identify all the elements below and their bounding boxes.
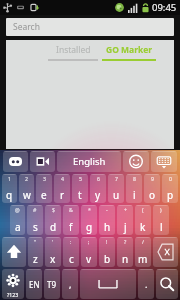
button[interactable]: Space — [80, 269, 136, 299]
staticText: ( — [142, 206, 144, 213]
staticText: z — [33, 252, 38, 266]
button[interactable]: EN — [26, 269, 42, 299]
button[interactable]: T9 — [44, 269, 60, 299]
button[interactable]: ) — [153, 205, 169, 235]
button[interactable]: " — [28, 237, 43, 267]
staticText: ' — [52, 238, 54, 245]
staticText: / — [142, 238, 144, 245]
button[interactable]: $ — [45, 205, 61, 235]
staticText: : — [70, 238, 72, 245]
button[interactable]: ! — [99, 237, 115, 267]
button[interactable]: 4 — [54, 174, 70, 203]
button[interactable]: & — [63, 205, 79, 235]
staticText: o — [149, 188, 156, 202]
button[interactable]: 1 — [2, 174, 17, 203]
staticText: 8 — [133, 175, 136, 182]
staticText: 09:45 — [152, 1, 177, 14]
staticText: w — [23, 188, 31, 202]
button[interactable]: 5 — [72, 174, 88, 203]
button[interactable]: Installed — [45, 40, 101, 59]
staticText: GO Marker — [106, 44, 153, 56]
button[interactable]: ' — [45, 237, 61, 267]
staticText: 1 — [8, 175, 11, 182]
staticText: l — [160, 220, 163, 234]
button[interactable]: GO Marker — [101, 40, 157, 59]
staticText: m — [138, 252, 148, 266]
staticText: 6 — [97, 175, 100, 182]
staticText: v — [86, 252, 92, 266]
button[interactable]: 2 — [19, 174, 34, 203]
staticText: d — [50, 220, 57, 234]
staticText: u — [113, 188, 120, 202]
button[interactable]: 9 — [144, 174, 160, 203]
staticText: T9 — [47, 279, 57, 290]
staticText: # — [33, 206, 37, 213]
staticText: @ — [15, 206, 20, 213]
staticText: 4 — [61, 175, 64, 182]
staticText: g — [86, 220, 93, 234]
staticText: ? — [124, 238, 127, 245]
button[interactable]: Theme — [3, 151, 28, 172]
staticText: Search — [13, 21, 40, 33]
button[interactable]: . — [138, 269, 154, 299]
staticText: 2 — [25, 175, 28, 182]
staticText: 0 — [169, 175, 172, 182]
staticText: , — [69, 278, 72, 290]
button[interactable]: Emoji — [123, 151, 149, 172]
button[interactable]: Hide keyboard — [151, 151, 177, 172]
staticText: ; — [88, 238, 90, 245]
staticText: r — [60, 188, 65, 202]
staticText: y — [95, 188, 101, 202]
staticText: e — [41, 188, 47, 202]
button[interactable]: @ — [10, 205, 25, 235]
button[interactable]: 8 — [126, 174, 142, 203]
staticText: j — [124, 220, 127, 234]
button[interactable]: * — [81, 205, 97, 235]
staticText: 9 — [151, 175, 154, 182]
button[interactable]: 7 — [108, 174, 124, 203]
staticText: h — [104, 220, 111, 234]
staticText: f — [69, 220, 73, 234]
button[interactable]: 3 — [36, 174, 52, 203]
staticText: 3 — [43, 175, 46, 182]
button[interactable]: ( — [135, 205, 151, 235]
button[interactable]: / — [135, 237, 151, 267]
staticText: $ — [52, 206, 55, 213]
button[interactable]: Shift — [2, 237, 26, 267]
button[interactable]: # — [27, 205, 43, 235]
staticText: EN — [29, 279, 40, 290]
staticText: ) — [160, 206, 162, 213]
staticText: ! — [106, 238, 108, 245]
staticText: . — [145, 278, 148, 290]
staticText: s — [33, 220, 38, 234]
button[interactable]: , — [62, 269, 78, 299]
button[interactable]: + — [117, 205, 133, 235]
button[interactable]: 0 — [162, 174, 178, 203]
staticText: n — [122, 252, 129, 266]
staticText: & — [69, 206, 73, 213]
staticText: i — [133, 188, 136, 202]
staticText: " — [34, 238, 37, 245]
button[interactable]: Search — [6, 18, 174, 36]
staticText: * — [88, 206, 91, 213]
button[interactable]: ? — [117, 237, 133, 267]
button[interactable]: Backspace — [153, 237, 178, 267]
button[interactable]: 6 — [90, 174, 106, 203]
button[interactable]: : — [63, 237, 79, 267]
staticText: 5 — [79, 175, 82, 182]
staticText: ?123 — [7, 291, 19, 298]
staticText: - — [106, 206, 108, 213]
staticText: b — [104, 252, 111, 266]
button[interactable]: - — [99, 205, 115, 235]
staticText: 7 — [115, 175, 118, 182]
button[interactable]: Search — [156, 269, 178, 299]
staticText: t — [78, 188, 82, 202]
button[interactable]: Symbols — [2, 269, 24, 299]
button[interactable]: English — [57, 151, 121, 172]
staticText: q — [6, 188, 13, 202]
staticText: x — [50, 252, 56, 266]
button[interactable]: Voice input — [30, 151, 55, 172]
button[interactable]: ; — [81, 237, 97, 267]
staticText: English — [73, 155, 106, 168]
staticText: Installed — [56, 44, 91, 56]
